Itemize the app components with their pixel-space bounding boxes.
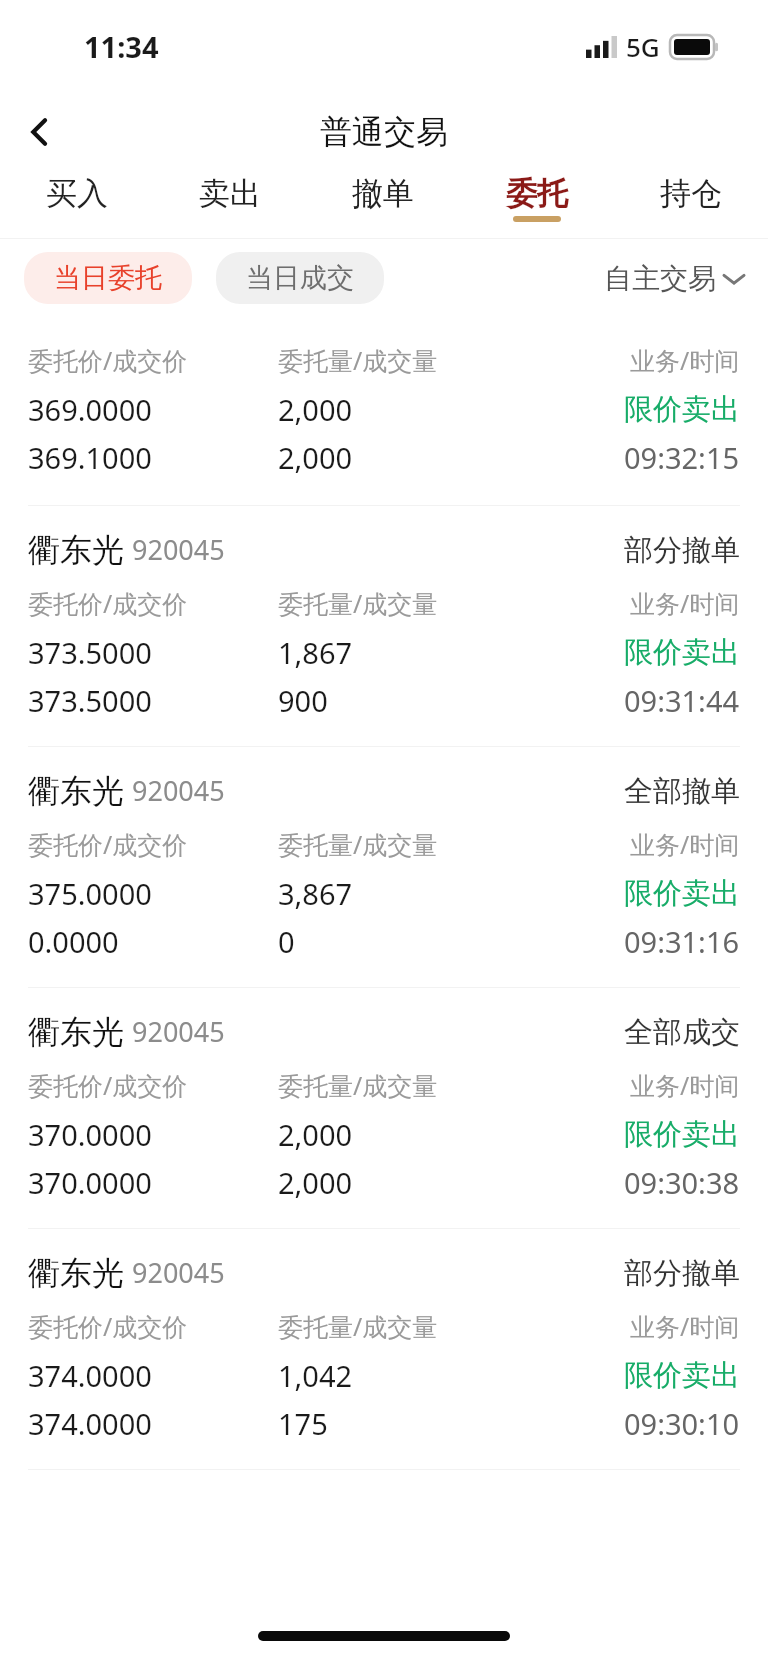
- staticText: 0: [278, 922, 295, 961]
- staticText: 370.0000: [28, 1115, 152, 1154]
- staticText: 全部成交: [624, 1014, 740, 1051]
- staticText: 11:34: [84, 27, 159, 66]
- staticText: 当日委托: [54, 261, 162, 295]
- staticText: 09:31:44: [624, 681, 740, 720]
- staticText: 900: [278, 681, 328, 720]
- button[interactable]: 衢东光: [0, 506, 768, 746]
- staticText: 限价卖出: [624, 1357, 740, 1394]
- staticText: 限价卖出: [624, 875, 740, 912]
- staticText: 2,000: [278, 1163, 353, 1202]
- staticText: 当日成交: [246, 261, 354, 295]
- staticText: 09:30:10: [624, 1404, 740, 1443]
- staticText: 920045: [132, 1013, 225, 1050]
- staticText: 买入: [46, 174, 108, 213]
- staticText: 委托价/成交价: [28, 827, 188, 861]
- staticText: 普通交易: [320, 112, 448, 152]
- staticText: 委托价/成交价: [28, 1068, 188, 1102]
- staticText: 自主交易: [604, 261, 716, 296]
- button[interactable]: 衢东光: [0, 988, 768, 1228]
- button[interactable]: 卖出: [153, 172, 306, 238]
- staticText: 920045: [132, 772, 225, 809]
- button[interactable]: 衢东光: [0, 747, 768, 987]
- staticText: 业务/时间: [630, 1309, 740, 1343]
- staticText: 业务/时间: [630, 343, 740, 377]
- staticText: 374.0000: [28, 1404, 152, 1443]
- staticText: 920045: [132, 531, 225, 568]
- staticText: 0.0000: [28, 922, 119, 961]
- staticText: 委托价/成交价: [28, 1309, 188, 1343]
- staticText: 持仓: [660, 174, 722, 213]
- staticText: 2,000: [278, 390, 353, 429]
- staticText: 373.5000: [28, 633, 152, 672]
- button[interactable]: 撤单: [306, 172, 460, 238]
- staticText: 175: [278, 1404, 328, 1443]
- button[interactable]: 持仓: [614, 172, 768, 238]
- button[interactable]: 衢东光: [0, 1229, 768, 1469]
- staticText: 衢东光: [28, 530, 124, 570]
- staticText: 委托量/成交量: [278, 1309, 438, 1343]
- staticText: 1,042: [278, 1356, 353, 1395]
- staticText: 2,000: [278, 1115, 353, 1154]
- staticText: 限价卖出: [624, 634, 740, 671]
- staticText: 1,867: [278, 633, 353, 672]
- staticText: 委托价/成交价: [28, 586, 188, 620]
- staticText: 部分撤单: [624, 532, 740, 569]
- button[interactable]: 买入: [0, 172, 153, 238]
- staticText: 375.0000: [28, 874, 152, 913]
- staticText: 3,867: [278, 874, 353, 913]
- button[interactable]: 当日委托: [24, 252, 192, 304]
- staticText: 委托价/成交价: [28, 343, 188, 377]
- staticText: 委托量/成交量: [278, 827, 438, 861]
- button[interactable]: 委托: [460, 172, 614, 238]
- staticText: 衢东光: [28, 1253, 124, 1293]
- staticText: 5G: [626, 29, 660, 64]
- staticText: 委托量/成交量: [278, 343, 438, 377]
- staticText: 369.1000: [28, 438, 152, 477]
- staticText: 2,000: [278, 438, 353, 477]
- button[interactable]: 当日成交: [216, 252, 384, 304]
- button[interactable]: 自主交易: [604, 261, 744, 296]
- staticText: 限价卖出: [624, 1116, 740, 1153]
- staticText: 委托量/成交量: [278, 586, 438, 620]
- staticText: 衢东光: [28, 771, 124, 811]
- staticText: 委托: [506, 174, 568, 213]
- staticText: 限价卖出: [624, 391, 740, 428]
- staticText: 衢东光: [28, 1012, 124, 1052]
- staticText: 09:30:38: [624, 1163, 740, 1202]
- staticText: 369.0000: [28, 390, 152, 429]
- staticText: 业务/时间: [630, 827, 740, 861]
- staticText: 920045: [132, 1254, 225, 1291]
- staticText: 09:32:15: [624, 438, 740, 477]
- button[interactable]: Back: [8, 100, 72, 164]
- staticText: 374.0000: [28, 1356, 152, 1395]
- staticText: 09:31:16: [624, 922, 740, 961]
- staticText: 370.0000: [28, 1163, 152, 1202]
- button[interactable]: 委托价/成交价: [0, 317, 768, 505]
- staticText: 委托量/成交量: [278, 1068, 438, 1102]
- staticText: 业务/时间: [630, 586, 740, 620]
- staticText: 373.5000: [28, 681, 152, 720]
- staticText: 撤单: [352, 174, 414, 213]
- staticText: 业务/时间: [630, 1068, 740, 1102]
- staticText: 全部撤单: [624, 773, 740, 810]
- staticText: 部分撤单: [624, 1255, 740, 1292]
- staticText: 卖出: [199, 174, 261, 213]
